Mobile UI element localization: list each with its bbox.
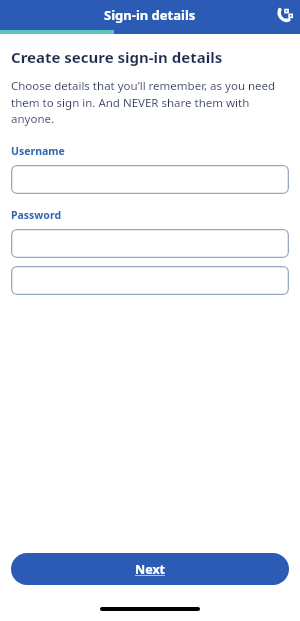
staticText: Password (11, 208, 62, 222)
button[interactable] (11, 266, 289, 295)
button[interactable] (11, 229, 289, 258)
button[interactable]: Next (11, 553, 289, 585)
staticText: Create secure sign-in details (11, 47, 223, 67)
button[interactable]: Call us (270, 0, 300, 30)
staticText: Sign-in details (104, 6, 196, 24)
button[interactable] (11, 165, 289, 194)
staticText: Choose details that you’ll remember, as … (11, 78, 289, 126)
staticText: Username (11, 144, 65, 158)
staticText: Next (135, 561, 166, 578)
